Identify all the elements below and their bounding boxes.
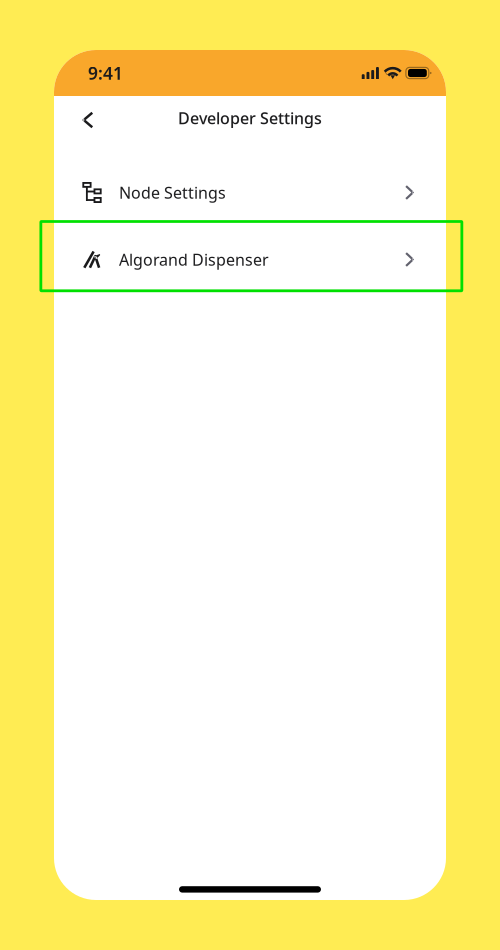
button[interactable]: Algorand Dispenser <box>54 226 446 293</box>
staticText: Developer Settings <box>178 107 322 129</box>
button[interactable]: Node Settings <box>54 159 446 226</box>
button[interactable]: Back <box>66 98 110 142</box>
staticText: Node Settings <box>119 182 226 203</box>
staticText: 9:41 <box>88 61 123 84</box>
staticText: Algorand Dispenser <box>119 249 269 270</box>
